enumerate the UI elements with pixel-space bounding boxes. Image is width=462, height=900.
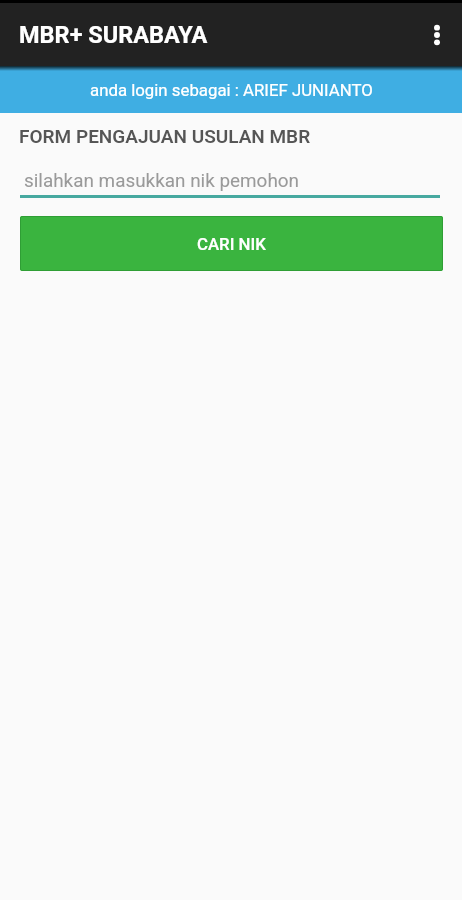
button[interactable]: CARI NIK [20, 216, 443, 271]
staticText: CARI NIK [197, 234, 266, 254]
button[interactable]: More options [413, 11, 461, 59]
staticText: anda login sebagai : ARIEF JUNIANTO [90, 80, 373, 100]
button[interactable]: silahkan masukkan nik pemohon [20, 169, 440, 198]
staticText: MBR+ SURABAYA [19, 21, 208, 49]
staticText: FORM PENGAJUAN USULAN MBR [19, 125, 311, 147]
staticText: silahkan masukkan nik pemohon [24, 169, 299, 191]
